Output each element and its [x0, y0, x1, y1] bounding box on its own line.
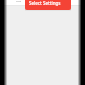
- button[interactable]: Select Settings: [25, 0, 71, 10]
- staticText: Select Settings: [29, 0, 61, 6]
- staticText: Type: [16, 0, 22, 3]
